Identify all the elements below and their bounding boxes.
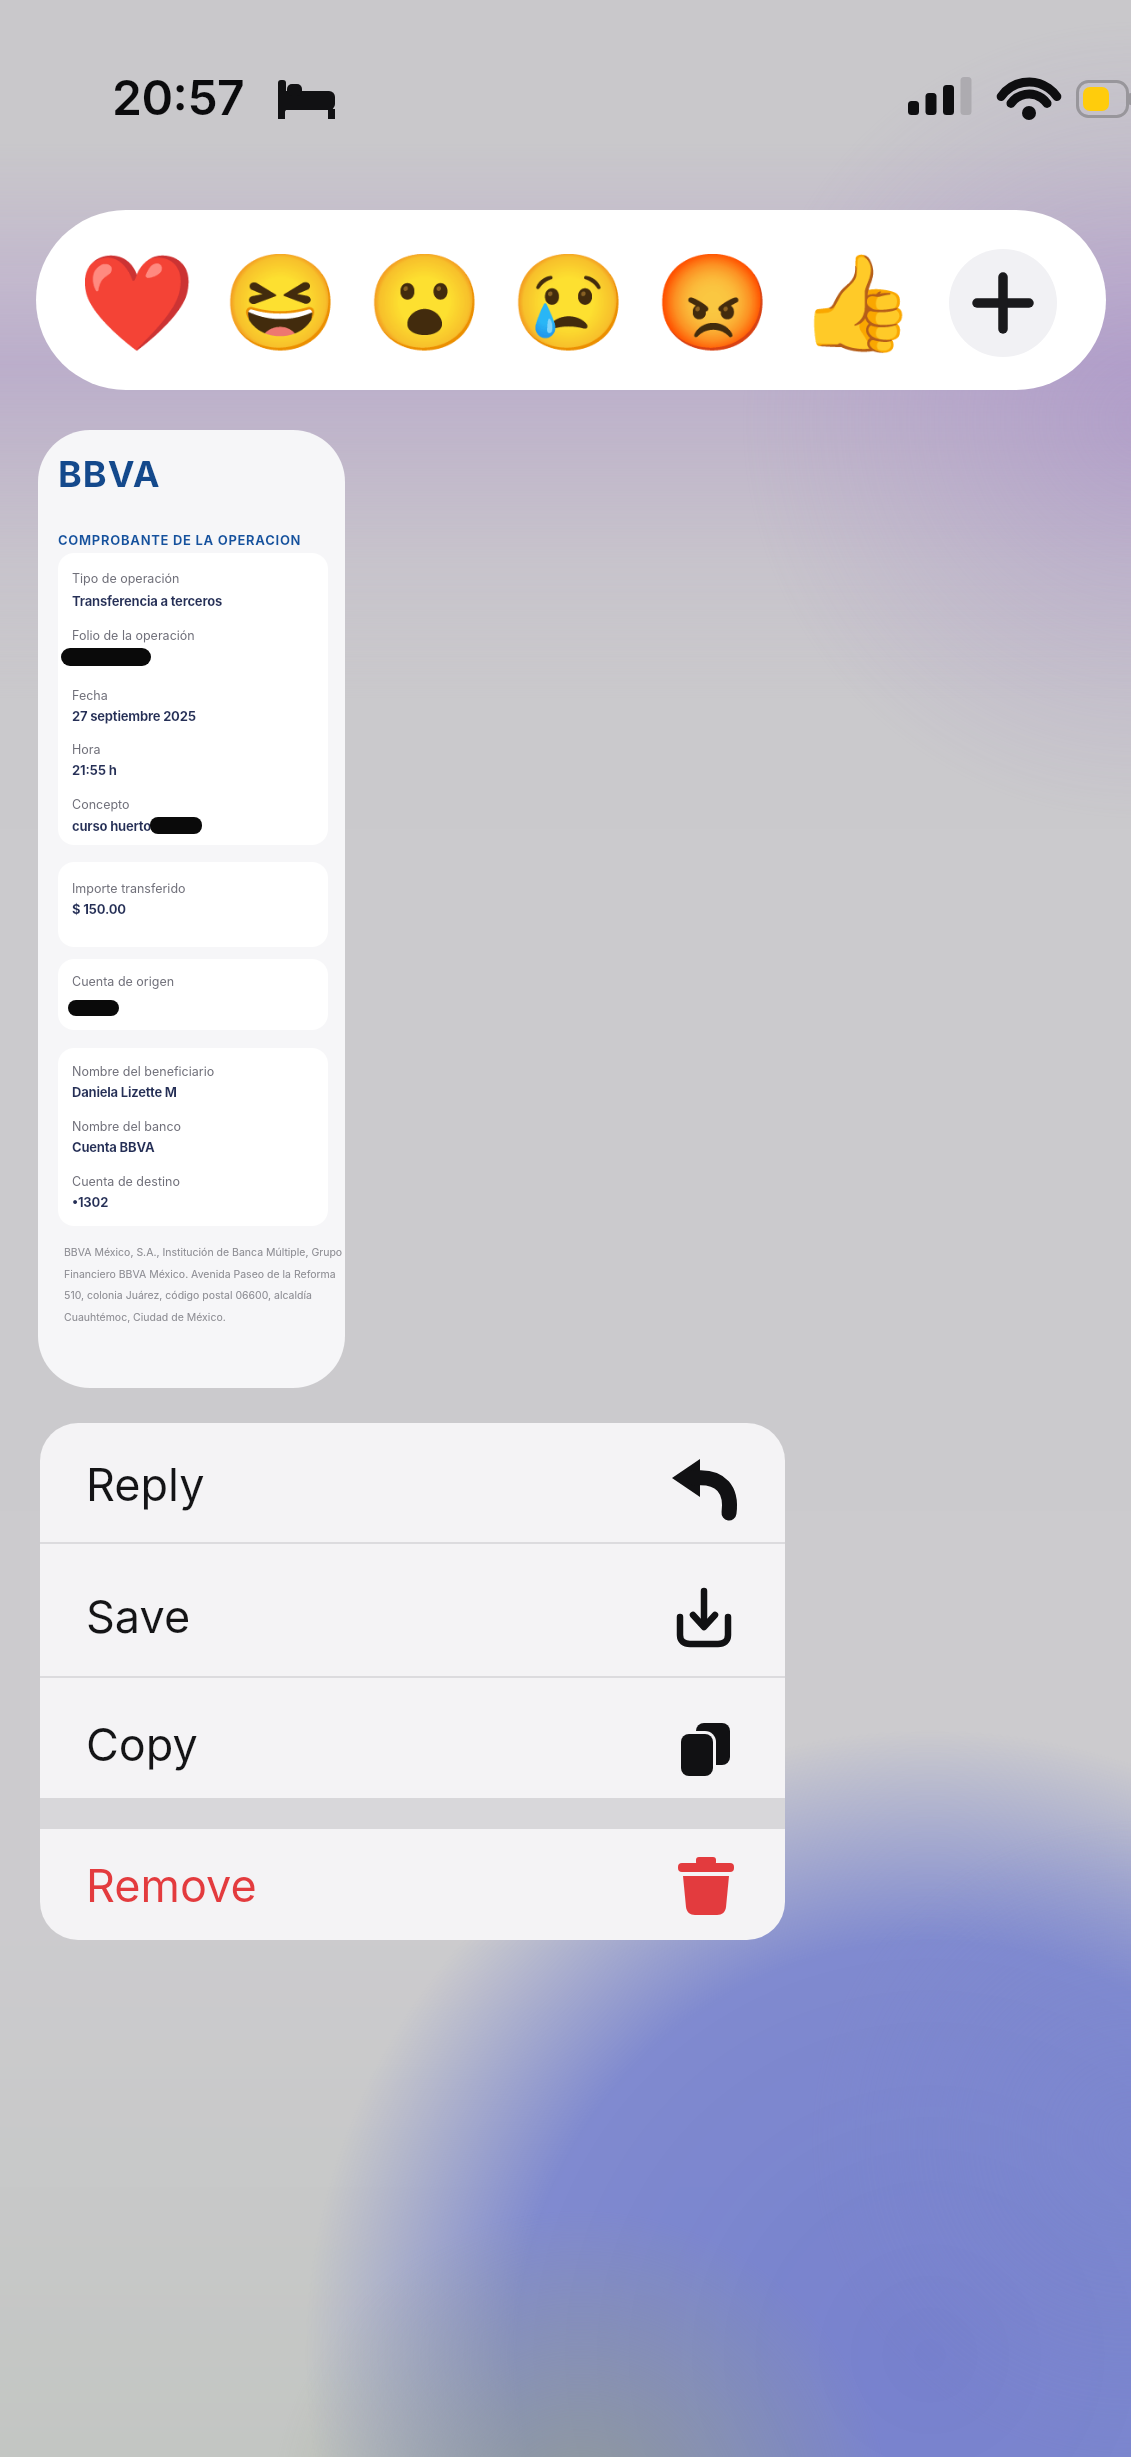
staticText: Cuenta BBVA [72,1139,155,1155]
staticText: Copy [86,1717,198,1771]
button[interactable]: 😡 [647,237,779,369]
staticText: Fecha [72,688,108,703]
staticText: curso huerto [72,818,152,834]
staticText: BBVA [58,452,161,496]
staticText: Nombre del banco [72,1119,182,1134]
button[interactable]: ❤️ [71,237,203,369]
staticText: 😮 [366,248,484,358]
button[interactable]: 😆 [215,237,347,369]
staticText: Daniela Lizette M [72,1084,177,1100]
staticText: Hora [72,742,101,757]
button[interactable]: 😮 [359,237,491,369]
staticText: Remove [86,1858,257,1912]
staticText: Cuauhtémoc, Ciudad de México. [64,1311,226,1324]
staticText: 👍 [798,248,916,358]
button[interactable] [949,249,1057,357]
staticText: Cuenta de origen [72,974,175,989]
staticText: Cuenta de destino [72,1174,180,1189]
staticText: Folio de la operación [72,628,195,643]
staticText: COMPROBANTE DE LA OPERACION [58,532,302,548]
staticText: 20:57 [112,68,245,126]
button[interactable]: Reply [40,1423,785,1542]
staticText: 😡 [654,248,772,358]
button[interactable]: Save [40,1544,785,1676]
staticText: $ 150.00 [72,901,126,917]
staticText: ❤️ [78,248,196,358]
staticText: Tipo de operación [72,571,180,586]
staticText: 21:55 h [72,762,117,778]
staticText: Financiero BBVA México. Avenida Paseo de… [64,1268,336,1281]
button[interactable]: 👍 [791,237,923,369]
staticText: Transferencia a terceros [72,593,223,609]
button[interactable]: Remove [40,1829,785,1940]
staticText: Nombre del beneficiario [72,1064,215,1079]
staticText: 😢 [510,248,628,358]
staticText: Reply [86,1457,205,1511]
staticText: Concepto [72,797,130,812]
staticText: Importe transferido [72,881,186,896]
button[interactable]: Copy [40,1678,785,1798]
staticText: Save [86,1589,191,1643]
staticText: BBVA México, S.A., Institución de Banca … [64,1246,343,1259]
button[interactable]: 😢 [503,237,635,369]
staticText: 27 septiembre 2025 [72,708,196,724]
button[interactable]: BBVA [38,430,345,1388]
staticText: •1302 [72,1194,109,1210]
staticText: 510, colonia Juárez, código postal 06600… [64,1289,312,1302]
staticText: 😆 [222,248,340,358]
